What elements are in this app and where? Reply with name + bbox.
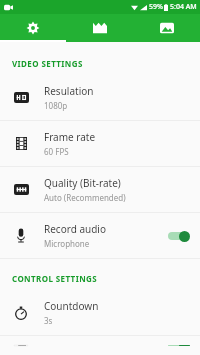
staticText: Frame rate <box>44 130 96 144</box>
staticText: VIDEO SETTINGS <box>12 58 200 69</box>
button[interactable]: Videos <box>66 14 133 42</box>
staticText: Record audio <box>44 222 106 236</box>
button[interactable]: Gallery <box>133 14 200 42</box>
staticText: 3s <box>44 315 53 326</box>
staticText: Auto (Recommended) <box>44 192 126 203</box>
button[interactable]: Toggle <box>166 229 190 243</box>
button[interactable]: Countdown <box>0 290 200 335</box>
staticText: 59% <box>149 2 163 12</box>
staticText: 5:04 AM <box>170 2 197 12</box>
staticText: 1080p <box>44 100 68 111</box>
staticText: Microphone <box>44 238 90 249</box>
button[interactable]: Frame rate <box>0 121 200 166</box>
button[interactable]: Resulation <box>0 75 200 120</box>
staticText: CONTROL SETTINGS <box>12 273 200 284</box>
staticText: Quality (Bit-rate) <box>44 176 121 190</box>
staticText: 60 FPS <box>44 146 69 157</box>
staticText: Countdown <box>44 299 99 313</box>
button[interactable]: Settings <box>0 14 66 42</box>
button[interactable]: Quality (Bit-rate) <box>0 167 200 212</box>
button[interactable]: Use magic Button <box>0 336 200 355</box>
button[interactable]: Record audio <box>0 213 200 258</box>
staticText: Resulation <box>44 84 94 98</box>
button[interactable]: Toggle <box>166 345 190 346</box>
